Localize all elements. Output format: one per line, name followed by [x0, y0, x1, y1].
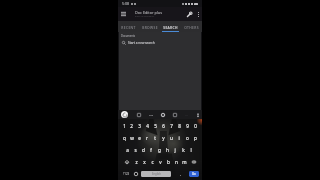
- button[interactable]: 3: [135, 119, 143, 132]
- button[interactable]: Navigation menu: [118, 7, 129, 21]
- button[interactable]: More options: [194, 8, 202, 21]
- staticText: e: [138, 135, 141, 141]
- button[interactable]: Settings: [185, 113, 188, 116]
- button[interactable]: n: [172, 156, 180, 168]
- staticText: SEARCH: [163, 25, 178, 29]
- button[interactable]: m: [180, 156, 188, 168]
- button[interactable]: l: [187, 144, 195, 156]
- button[interactable]: s: [131, 144, 139, 156]
- button[interactable]: 4: [143, 119, 151, 132]
- button[interactable]: 8: [175, 119, 183, 132]
- button[interactable]: GIF: [149, 113, 153, 116]
- button[interactable]: 9: [183, 119, 191, 132]
- staticText: a: [126, 147, 129, 153]
- staticText: d: [142, 147, 145, 153]
- button[interactable]: p: [191, 132, 199, 144]
- button[interactable]: Stickers: [137, 113, 141, 117]
- staticText: r: [146, 135, 148, 141]
- staticText: editor of documents: [135, 15, 155, 18]
- button[interactable]: Shift: [121, 156, 132, 168]
- button[interactable]: Search: [189, 171, 199, 177]
- button[interactable]: SEARCH: [160, 21, 181, 32]
- staticText: z: [135, 159, 138, 165]
- staticText: GIF: [149, 113, 153, 116]
- button[interactable]: BROWSE: [139, 21, 160, 32]
- staticText: ?123: [123, 172, 130, 176]
- staticText: u: [170, 135, 173, 141]
- button[interactable]: English: [141, 171, 171, 177]
- button[interactable]: Voice input: [196, 113, 200, 117]
- staticText: 0: [194, 123, 197, 129]
- staticText: 7: [170, 123, 173, 129]
- staticText: f: [150, 147, 152, 153]
- staticText: 4: [146, 123, 149, 129]
- button[interactable]: 2: [128, 119, 135, 132]
- staticText: l: [190, 147, 192, 153]
- staticText: b: [167, 159, 170, 165]
- button[interactable]: o: [183, 132, 191, 144]
- button[interactable]: Backspace: [188, 156, 199, 168]
- button[interactable]: Emoji: [131, 168, 141, 180]
- button[interactable]: c: [148, 156, 156, 168]
- button[interactable]: j: [171, 144, 179, 156]
- button[interactable]: Google search: [121, 111, 128, 118]
- staticText: 5:08: [122, 1, 130, 6]
- button[interactable]: w: [128, 132, 135, 144]
- staticText: s: [134, 147, 137, 153]
- staticText: Doc Editor plus: [135, 10, 163, 15]
- staticText: English: [152, 172, 161, 176]
- staticText: OTHERS: [184, 25, 199, 29]
- staticText: BROWSE: [142, 25, 158, 29]
- staticText: w: [130, 135, 134, 141]
- button[interactable]: Themes: [161, 113, 165, 117]
- button[interactable]: e: [135, 132, 143, 144]
- staticText: Documents: [121, 34, 135, 38]
- button[interactable]: k: [179, 144, 187, 156]
- button[interactable]: v: [156, 156, 164, 168]
- staticText: 8: [178, 123, 181, 129]
- staticText: 6: [162, 123, 165, 129]
- button[interactable]: 0: [191, 119, 199, 132]
- button[interactable]: ?123: [121, 168, 131, 180]
- staticText: 5: [154, 123, 157, 129]
- button[interactable]: RECENT: [118, 21, 139, 32]
- staticText: n: [175, 159, 178, 165]
- button[interactable]: q: [121, 132, 128, 144]
- button[interactable]: r: [143, 132, 151, 144]
- button[interactable]: f: [147, 144, 155, 156]
- staticText: Start a new search: [128, 41, 155, 45]
- button[interactable]: 6: [159, 119, 167, 132]
- button[interactable]: .: [171, 168, 189, 180]
- button[interactable]: 7: [167, 119, 175, 132]
- button[interactable]: a: [124, 144, 131, 156]
- staticText: q: [123, 135, 126, 141]
- staticText: 3: [138, 123, 141, 129]
- staticText: m: [182, 159, 187, 165]
- button[interactable]: y: [159, 132, 167, 144]
- button[interactable]: g: [155, 144, 163, 156]
- staticText: o: [186, 135, 189, 141]
- button[interactable]: t: [151, 132, 159, 144]
- staticText: 1: [123, 123, 126, 129]
- button[interactable]: x: [140, 156, 148, 168]
- button[interactable]: Tools: [184, 8, 194, 21]
- button[interactable]: i: [175, 132, 183, 144]
- staticText: Go: [192, 172, 196, 176]
- staticText: 9: [186, 123, 189, 129]
- button[interactable]: 1: [121, 119, 128, 132]
- button[interactable]: z: [132, 156, 140, 168]
- button[interactable]: Clipboard: [173, 113, 177, 117]
- button[interactable]: OTHERS: [181, 21, 202, 32]
- button[interactable]: 5: [151, 119, 159, 132]
- staticText: k: [182, 147, 185, 153]
- staticText: g: [158, 147, 161, 153]
- staticText: i: [178, 135, 180, 141]
- staticText: .: [180, 172, 181, 177]
- staticText: 2: [130, 123, 133, 129]
- button[interactable]: h: [163, 144, 171, 156]
- button[interactable]: d: [139, 144, 147, 156]
- button[interactable]: u: [167, 132, 175, 144]
- staticText: x: [143, 159, 146, 165]
- button[interactable]: Start a new search: [122, 39, 201, 47]
- button[interactable]: b: [164, 156, 172, 168]
